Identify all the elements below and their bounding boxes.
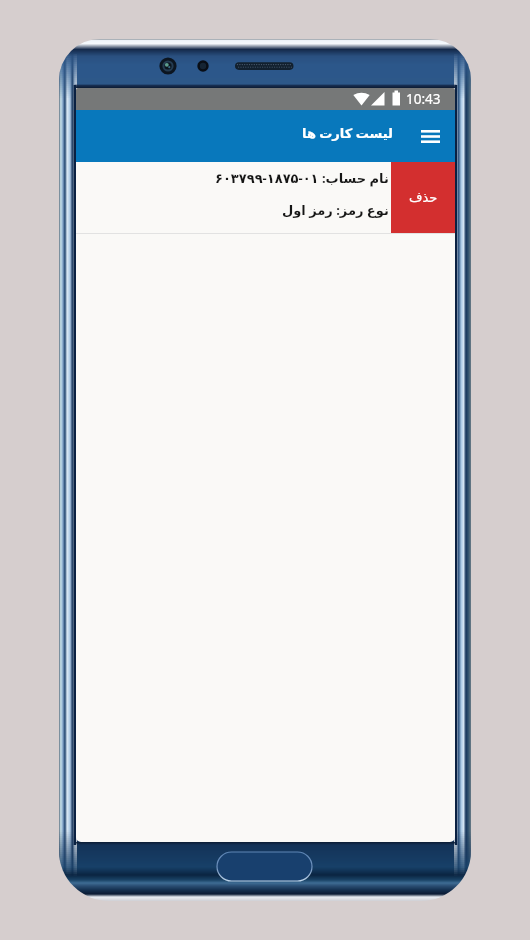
button[interactable]: حذف — [391, 162, 455, 233]
button[interactable]: Menu — [408, 114, 452, 158]
staticText: 10:43 — [406, 90, 441, 108]
staticText: لیست کارت ها — [302, 124, 393, 142]
staticText: حذف — [409, 190, 438, 205]
staticText: نام حساب: ۰۱-۱۸۷۵-۶۰۳۷۹۹ — [215, 169, 389, 187]
staticText: نوع رمز: رمز اول — [282, 201, 389, 219]
button[interactable]: نام حساب: ۰۱-۱۸۷۵-۶۰۳۷۹۹ — [76, 162, 391, 233]
